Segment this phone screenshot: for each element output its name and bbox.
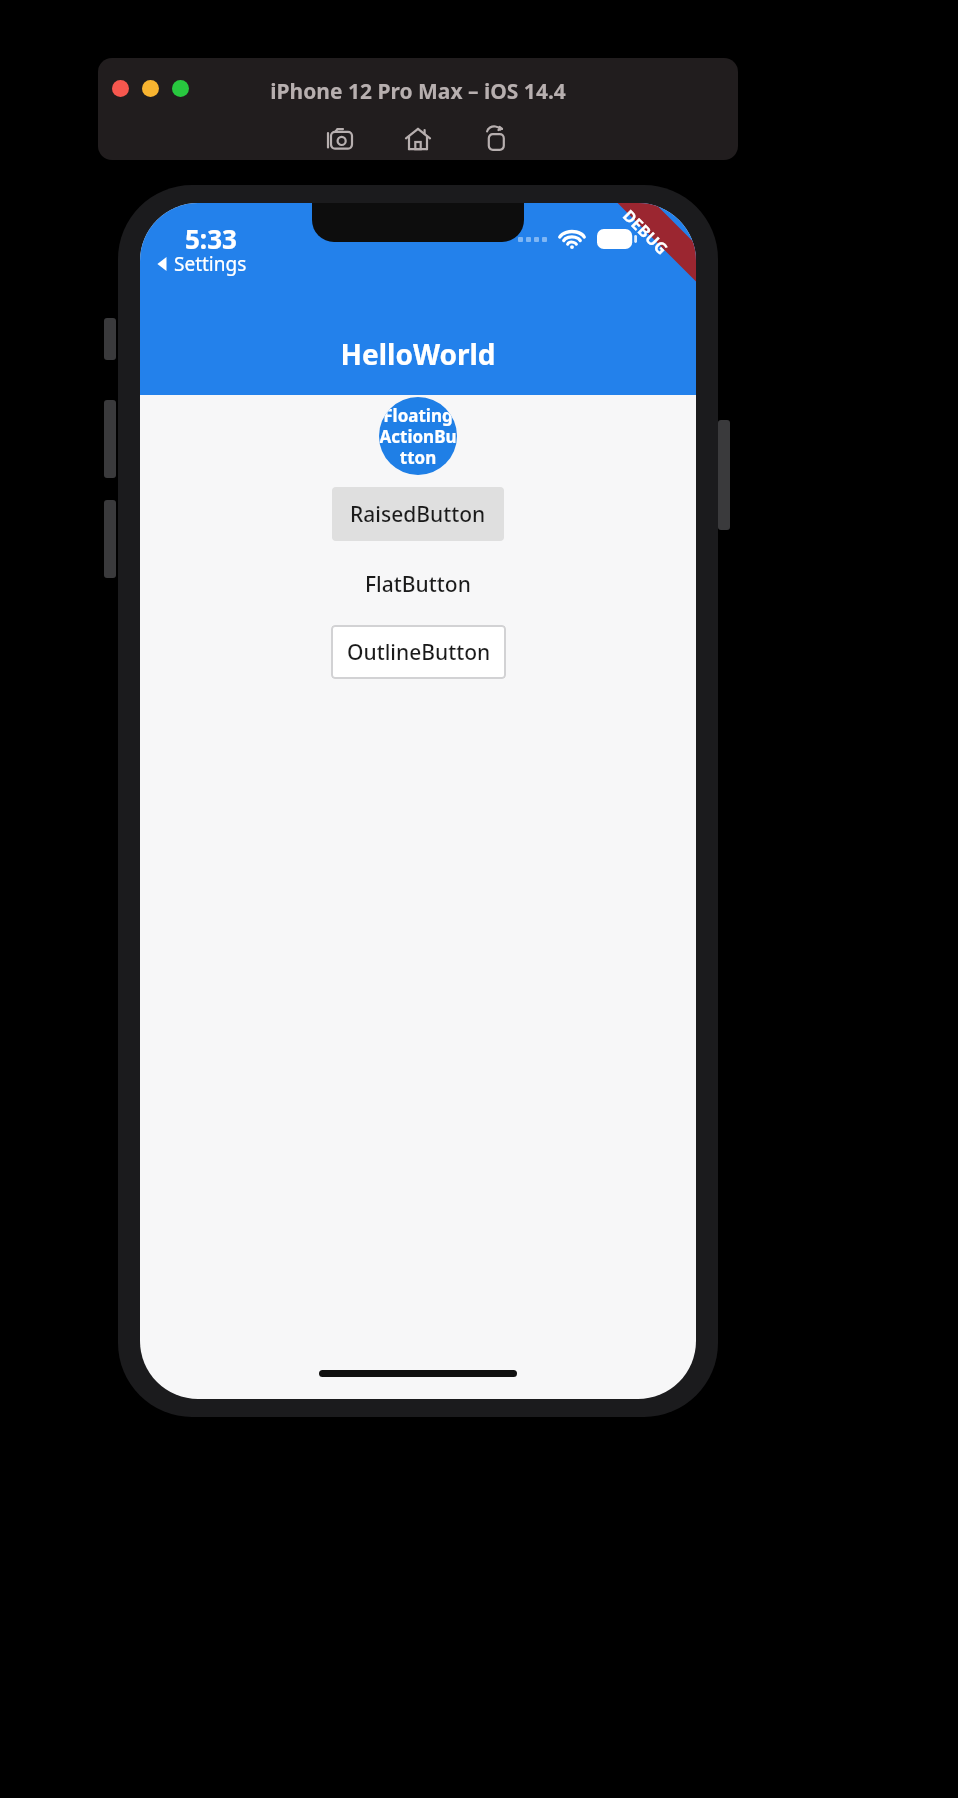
staticText: Settings <box>174 251 247 277</box>
button[interactable]: FloatingActionButton <box>379 397 457 475</box>
button[interactable]: Settings <box>156 251 247 277</box>
staticText: FloatingActionButton <box>379 404 457 469</box>
button[interactable]: Close <box>112 80 129 97</box>
button[interactable]: Maximise <box>172 80 189 97</box>
button[interactable]: Home <box>397 118 439 160</box>
button[interactable]: Rotate <box>475 118 517 160</box>
button[interactable]: Minimise <box>142 80 159 97</box>
staticText: OutlineButton <box>347 638 491 667</box>
staticText: iPhone 12 Pro Max – iOS 14.4 <box>98 77 738 106</box>
button[interactable]: OutlineButton <box>331 625 506 679</box>
staticText: FlatButton <box>365 570 471 599</box>
button[interactable]: FlatButton <box>332 559 504 609</box>
staticText: HelloWorld <box>140 335 696 373</box>
button[interactable]: Screenshot <box>319 118 361 160</box>
staticText: DEBUG <box>618 205 673 259</box>
staticText: RaisedButton <box>350 500 486 529</box>
button[interactable]: RaisedButton <box>332 487 504 541</box>
staticText: 5:33 <box>185 221 237 256</box>
